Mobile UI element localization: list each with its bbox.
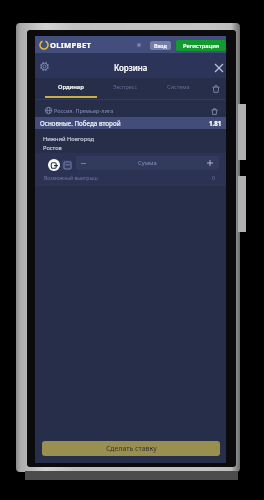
button[interactable]: Settings: [36, 58, 53, 75]
staticText: Вход: [154, 42, 167, 49]
button[interactable]: Remove event: [208, 105, 221, 118]
staticText: Основные. Победа второй: [40, 119, 121, 128]
button[interactable]: Система: [156, 78, 201, 99]
staticText: Экспресс: [113, 83, 138, 90]
staticText: Сделать ставку: [106, 444, 157, 453]
staticText: Россия. Премьер-лига: [54, 107, 114, 114]
staticText: Сумма: [138, 159, 157, 167]
staticText: Нижний Новгород: [43, 135, 94, 143]
button[interactable]: Основные. Победа второй: [35, 117, 226, 129]
button[interactable]: Сумма: [76, 156, 219, 170]
button[interactable]: Close: [210, 59, 227, 76]
button[interactable]: Promo code: [48, 159, 60, 171]
staticText: 1.81: [209, 119, 222, 127]
staticText: Регистрация: [183, 42, 220, 50]
staticText: Ростов: [43, 144, 62, 152]
staticText: 0: [212, 175, 215, 182]
staticText: Система: [167, 83, 190, 90]
staticText: OLIMPBET: [50, 40, 92, 50]
button[interactable]: Регистрация: [176, 40, 226, 51]
staticText: Возможный выигрыш: [44, 175, 98, 182]
button[interactable]: Вход: [150, 41, 171, 50]
button[interactable]: Экспресс: [103, 78, 147, 99]
button[interactable]: Ординар: [45, 78, 97, 99]
staticText: Корзина: [114, 62, 148, 73]
staticText: Ординар: [58, 83, 84, 91]
button[interactable]: Сделать ставку: [42, 441, 220, 456]
button[interactable]: Calculator: [62, 160, 72, 170]
button[interactable]: Clear all: [208, 81, 224, 97]
